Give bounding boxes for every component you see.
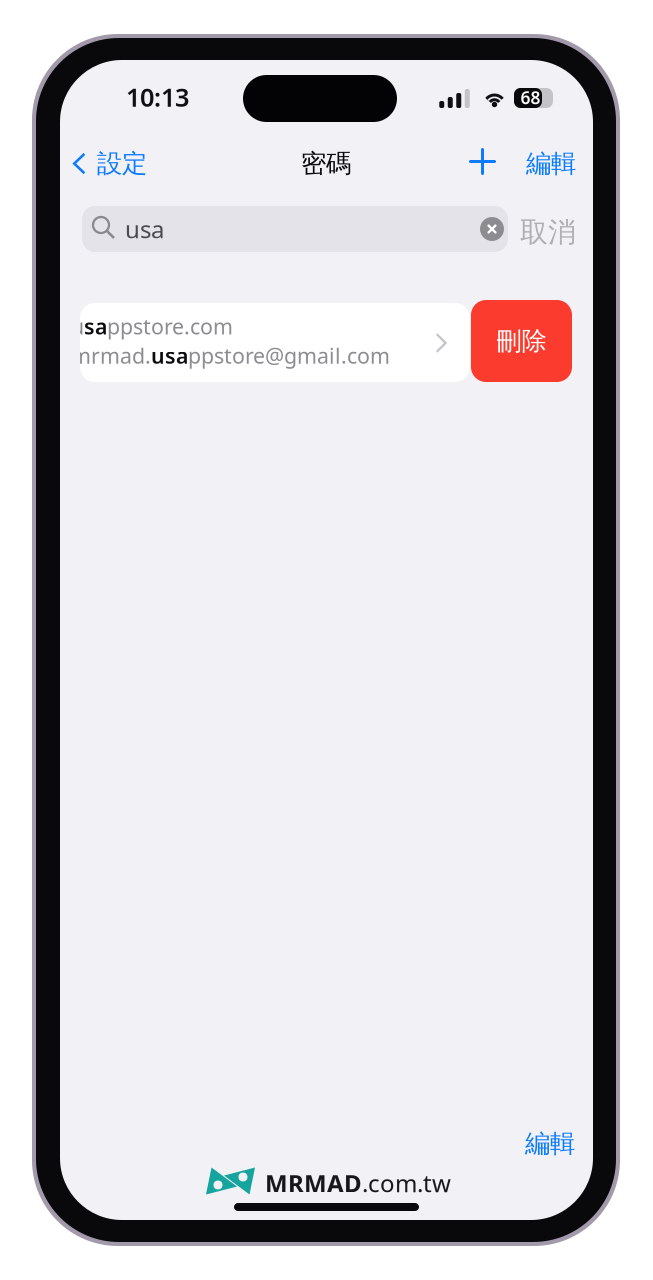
button[interactable]: 刪除 (471, 300, 572, 382)
staticText: 刪除 (496, 325, 546, 356)
button[interactable]: 編輯 (517, 1121, 583, 1166)
staticText: usa (125, 213, 164, 245)
button[interactable]: 設定 (65, 141, 153, 186)
button[interactable]: usappstore.com (80, 303, 470, 382)
staticText: mrmad.usappstore@gmail.com (71, 341, 390, 370)
staticText: 編輯 (525, 1128, 575, 1159)
staticText: MRMAD.com.tw (265, 1167, 451, 1199)
staticText: 取消 (520, 215, 576, 249)
staticText: 10:13 (126, 80, 189, 114)
button[interactable]: Add password (460, 139, 505, 184)
staticText: 編輯 (526, 148, 576, 179)
button[interactable]: Clear search text (472, 209, 512, 249)
button[interactable]: 取消 (514, 209, 582, 255)
button[interactable]: usa (82, 206, 508, 252)
staticText: usappstore.com (71, 312, 233, 340)
staticText: 密碼 (301, 148, 351, 179)
button[interactable]: 編輯 (519, 141, 583, 186)
staticText: 設定 (97, 148, 147, 179)
staticText: 68 (520, 86, 540, 109)
